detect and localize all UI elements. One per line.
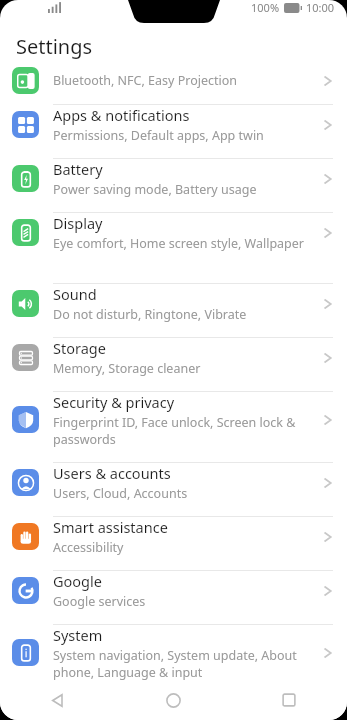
staticText: Battery [53, 159, 103, 179]
staticText: Google [53, 571, 102, 591]
staticText: Bluetooth, NFC, Easy Projection [53, 72, 238, 89]
button[interactable]: Google [0, 571, 347, 625]
staticText: 100% [251, 0, 280, 15]
button[interactable]: Apps & notifications [0, 105, 347, 159]
staticText: Users, Cloud, Accounts [53, 485, 188, 502]
staticText: Fingerprint ID, Face unlock, Screen lock… [53, 414, 315, 447]
button[interactable]: Smart assistance [0, 517, 347, 571]
staticText: Security & privacy [53, 392, 175, 412]
button[interactable]: Bluetooth, NFC, Easy Projection [0, 67, 347, 105]
staticText: Users & accounts [53, 463, 171, 483]
button[interactable]: Battery [0, 159, 347, 213]
button[interactable]: System [0, 625, 347, 680]
button[interactable]: Sound [0, 284, 347, 338]
button[interactable]: Storage [0, 338, 347, 392]
button[interactable]: Users & accounts [0, 463, 347, 517]
staticText: Storage [53, 338, 106, 358]
button[interactable]: Recents [231, 680, 347, 720]
button[interactable]: Display [0, 213, 347, 284]
staticText: Do not disturb, Ringtone, Vibrate [53, 306, 247, 323]
staticText: Memory, Storage cleaner [53, 360, 201, 377]
staticText: Accessibility [53, 539, 124, 556]
staticText: Eye comfort, Home screen style, Wallpape… [53, 235, 304, 252]
staticText: Settings [16, 33, 93, 60]
staticText: Display [53, 213, 103, 233]
staticText: Google services [53, 593, 146, 610]
button[interactable]: Home [115, 680, 231, 720]
button[interactable]: Back [0, 680, 115, 720]
staticText: Sound [53, 284, 97, 304]
staticText: Smart assistance [53, 517, 168, 537]
staticText: 10:00 [306, 0, 335, 15]
staticText: Permissions, Default apps, App twin [53, 127, 264, 144]
staticText: Apps & notifications [53, 105, 190, 125]
staticText: System navigation, System update, About … [53, 647, 315, 680]
staticText: Power saving mode, Battery usage [53, 181, 257, 198]
button[interactable]: Security & privacy [0, 392, 347, 463]
staticText: System [53, 625, 103, 645]
